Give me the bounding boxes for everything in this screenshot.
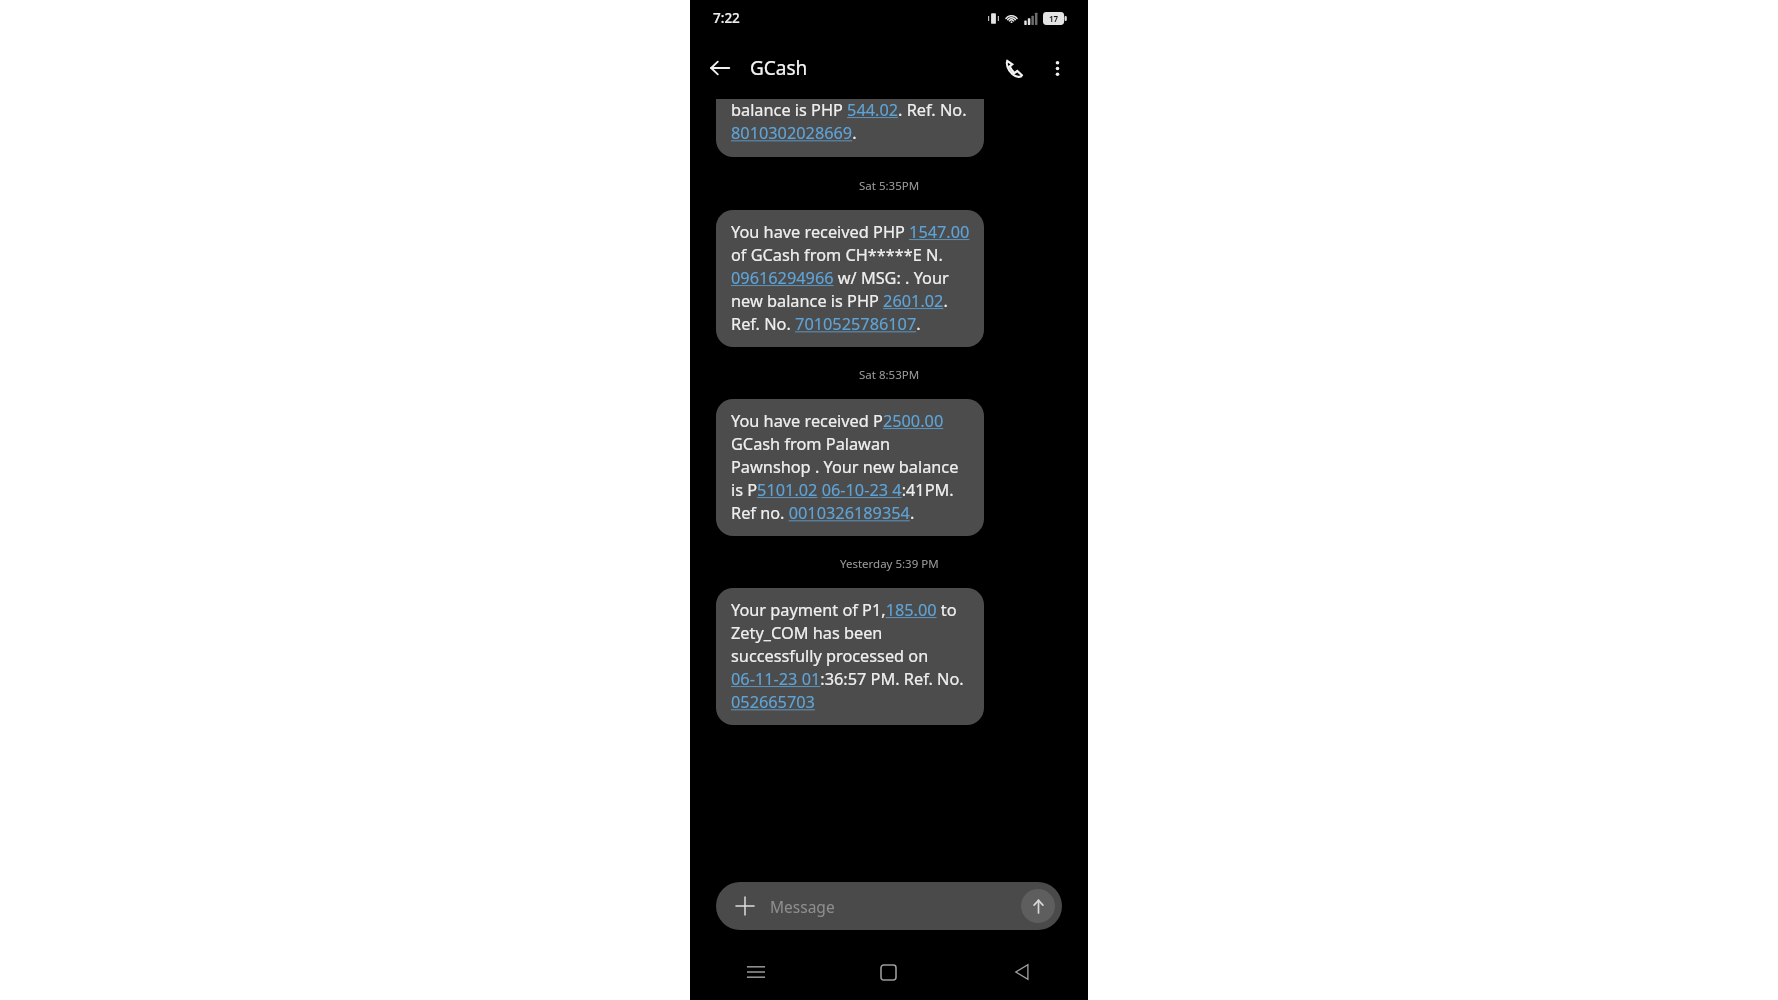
button[interactable]: balance is PHP 544.02. Ref. No. 80103020… [716,99,984,157]
staticText: Sat 8:53PM [859,367,920,383]
button[interactable]: Back [698,46,742,90]
button[interactable]: You have received PHP 1547.00 of GCash f… [716,210,984,347]
staticText: You have received PHP 1547.00 of GCash f… [731,221,971,335]
staticText: Yesterday 5:39 PM [840,556,939,572]
button[interactable]: You have received P2500.00 GCash from Pa… [716,399,984,536]
button[interactable]: Your payment of P1,185.00 to Zety_COM ha… [716,588,984,725]
staticText: Your payment of P1,185.00 to Zety_COM ha… [731,599,971,713]
button[interactable]: Send [1021,889,1055,923]
button[interactable]: Recent apps [690,944,822,1000]
button[interactable]: Back [955,944,1088,1000]
staticText: Sat 5:35PM [859,178,920,194]
button[interactable]: Home [822,944,955,1000]
staticText: Message [770,896,835,917]
staticText: balance is PHP 544.02. Ref. No. 80103020… [731,99,971,144]
button[interactable]: Attach [716,882,1062,930]
button[interactable]: Call [991,46,1035,90]
staticText: You have received P2500.00 GCash from Pa… [731,410,971,524]
button[interactable]: Attach [728,889,762,923]
staticText: 7:22 [713,9,740,27]
button[interactable]: More options [1035,46,1079,90]
staticText: GCash [750,55,808,81]
staticText: 17 [1049,13,1059,24]
